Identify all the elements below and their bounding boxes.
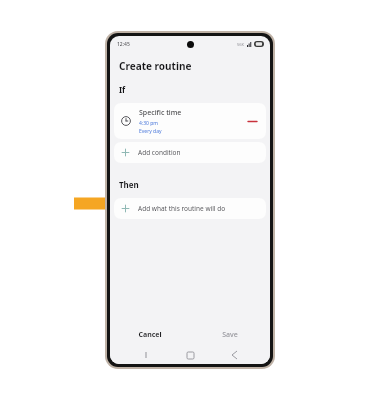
button[interactable]: Specific time: [114, 103, 266, 139]
staticText: If: [119, 84, 126, 95]
button[interactable]: Home: [182, 347, 198, 363]
other: Pointer arrow: [74, 191, 126, 216]
button[interactable]: Recent apps: [138, 347, 154, 363]
staticText: Every day: [139, 128, 162, 135]
button[interactable]: Remove condition: [245, 114, 259, 128]
button[interactable]: Cancel: [110, 324, 190, 346]
staticText: Specific time: [139, 108, 182, 118]
staticText: Create routine: [119, 59, 192, 73]
staticText: Cancel: [138, 330, 162, 340]
button[interactable]: Add condition: [114, 142, 266, 163]
button[interactable]: Back: [226, 347, 242, 363]
staticText: Then: [119, 179, 139, 190]
button[interactable]: Add what this routine will do: [114, 198, 266, 219]
button[interactable]: Save: [190, 324, 270, 346]
staticText: 4:30 pm: [139, 120, 158, 127]
staticText: Add what this routine will do: [138, 204, 226, 213]
staticText: 56K: [237, 42, 245, 47]
staticText: Add condition: [138, 148, 181, 157]
staticText: 12:45: [117, 41, 130, 48]
staticText: Save: [222, 330, 238, 340]
